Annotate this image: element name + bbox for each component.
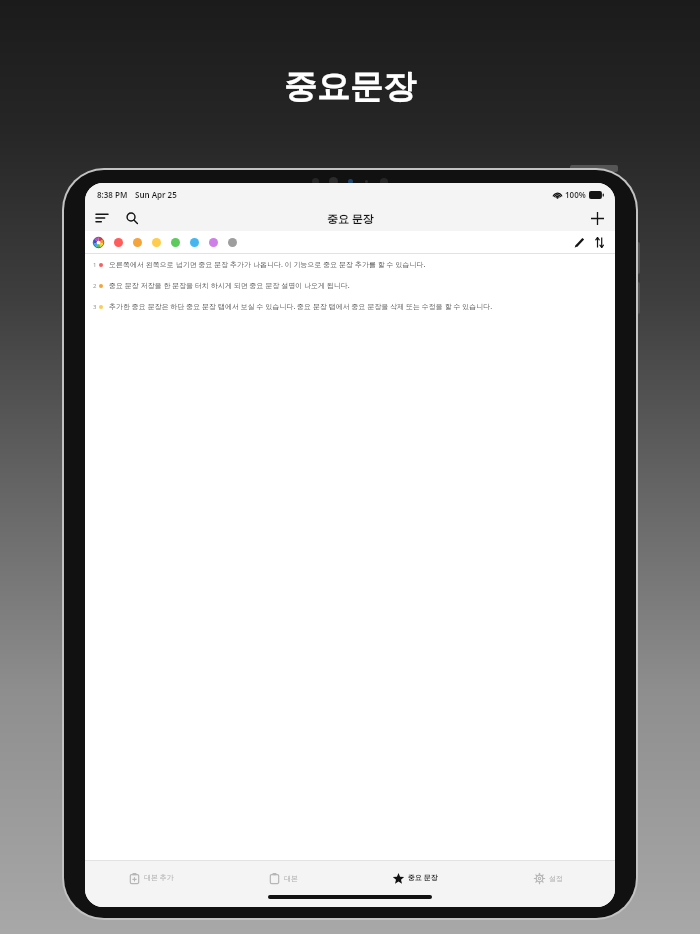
button[interactable]: 1: [85, 254, 615, 275]
button[interactable]: Color picker: [93, 237, 104, 248]
staticText: Sun Apr 25: [135, 189, 177, 200]
staticText: 1: [93, 261, 97, 269]
button[interactable]: Sort: [590, 233, 608, 251]
button[interactable]: 대본: [217, 869, 349, 887]
button[interactable]: 대본 추가: [85, 869, 217, 887]
staticText: 2: [93, 282, 97, 290]
button[interactable]: Color: [171, 238, 180, 247]
staticText: 대본 추가: [144, 873, 174, 883]
staticText: 중요 문장: [327, 211, 374, 226]
button[interactable]: Color: [228, 238, 237, 247]
staticText: 오른쪽에서 왼쪽으로 넘기면 중요 문장 추가가 나옵니다. 이 기능으로 중요…: [109, 260, 426, 270]
staticText: 중요 문장 저장을 한 문장을 터치 하시게 되면 중요 문장 설명이 나오게 …: [109, 281, 350, 291]
staticText: 중요 문장: [408, 873, 438, 883]
button[interactable]: 중요 문장: [349, 869, 482, 887]
button[interactable]: Color: [133, 238, 142, 247]
staticText: 설정: [549, 874, 563, 883]
button[interactable]: 3: [85, 296, 615, 317]
button[interactable]: Color: [209, 238, 218, 247]
button[interactable]: 2: [85, 275, 615, 296]
staticText: 대본: [284, 874, 298, 883]
button[interactable]: Search: [121, 207, 143, 229]
staticText: 3: [93, 303, 97, 311]
staticText: 중요문장: [284, 66, 416, 108]
button[interactable]: Color: [114, 238, 123, 247]
staticText: 8:38 PM: [97, 189, 128, 200]
button[interactable]: Add: [586, 207, 608, 229]
staticText: 추가한 중요 문장은 하단 중요 문장 탭에서 보실 수 있습니다. 중요 문장…: [109, 302, 493, 312]
button[interactable]: Edit: [570, 233, 588, 251]
button[interactable]: Color: [152, 238, 161, 247]
button[interactable]: 설정: [482, 869, 615, 887]
staticText: 100%: [565, 189, 586, 200]
button[interactable]: Color: [190, 238, 199, 247]
button[interactable]: Menu: [91, 207, 113, 229]
